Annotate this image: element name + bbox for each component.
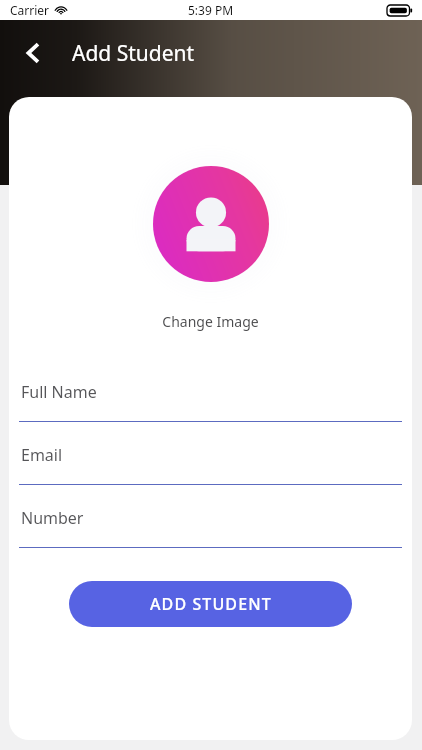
button[interactable]: Change Image [162,312,259,331]
staticText: Add Student [72,39,195,68]
button[interactable]: ADD STUDENT [69,581,352,627]
button[interactable]: Change profile image [131,144,291,304]
button[interactable]: Back [14,34,52,72]
button[interactable]: Email [19,444,402,485]
button[interactable]: Full Name [19,381,402,422]
staticText: 5:39 PM [188,2,234,18]
button[interactable]: Number [19,507,402,548]
staticText: Number [21,507,84,529]
staticText: Full Name [21,381,97,403]
staticText: Carrier [10,2,50,18]
staticText: Email [21,444,63,466]
staticText: ADD STUDENT [150,593,272,615]
